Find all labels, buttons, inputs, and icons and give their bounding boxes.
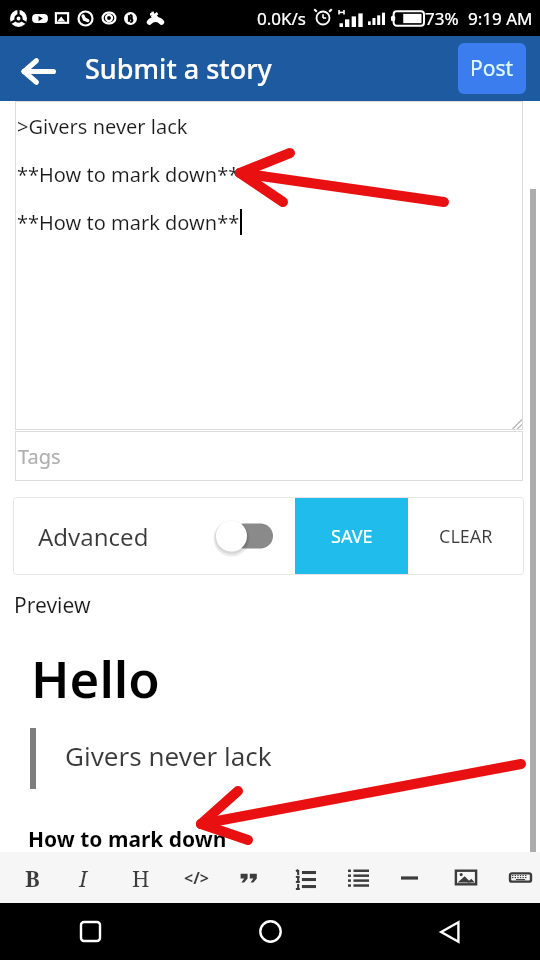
staticText: 9:19 AM [468,7,533,30]
button[interactable]: SAVE [295,497,408,575]
button[interactable]: CLEAR [408,497,524,575]
button[interactable]: Post [458,43,526,94]
staticText: **How to mark down** [17,209,240,236]
button[interactable]: Italic [59,852,107,903]
staticText: CLEAR [439,524,493,549]
staticText: </> [184,867,209,889]
button[interactable]: Heading [117,852,165,903]
staticText: 0.0K/s [257,7,306,30]
button[interactable]: Recent apps [0,903,180,960]
staticText: 73% [425,7,459,30]
button[interactable]: Advanced [13,497,295,575]
staticText: Hello [31,643,160,712]
button[interactable]: Numbered list [281,852,329,903]
button[interactable]: Insert image [442,852,490,903]
staticText: Tags [18,443,61,470]
button[interactable]: Code [172,852,220,903]
button[interactable]: Horizontal rule [385,852,433,903]
button[interactable]: Bold [8,852,56,903]
staticText: Preview [14,591,91,620]
staticText: Submit a story [85,50,272,87]
staticText: B [25,863,40,893]
staticText: How to mark down [28,825,227,852]
button[interactable]: Quote [225,852,273,903]
staticText: Advanced [38,520,149,553]
button[interactable]: Back [360,903,540,960]
staticText: I [79,863,88,893]
button[interactable]: Bulleted list [334,852,382,903]
button[interactable]: Keyboard [496,852,540,903]
staticText: Givers never lack [65,738,272,773]
button[interactable]: Home [180,903,360,960]
staticText: Post [470,54,514,83]
staticText: **How to mark down** [17,161,240,188]
staticText: H [132,863,150,893]
button[interactable]: Back [6,39,66,99]
staticText: >Givers never lack [17,113,188,140]
staticText: SAVE [331,524,373,549]
